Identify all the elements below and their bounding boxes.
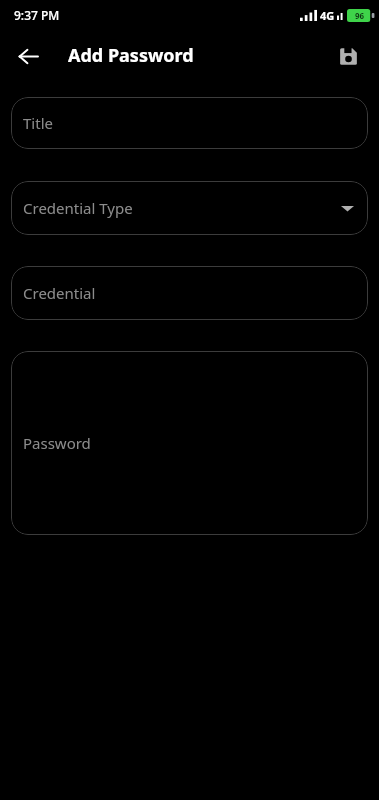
staticText: Password — [23, 433, 91, 453]
staticText: 9:37 PM — [14, 7, 60, 23]
staticText: Credential Type — [23, 198, 133, 218]
staticText: Add Password — [68, 43, 194, 68]
button[interactable]: Password — [11, 351, 368, 535]
staticText: Title — [23, 113, 53, 133]
staticText: 96 — [355, 10, 365, 21]
staticText: 4G — [320, 8, 335, 23]
staticText: Credential — [23, 283, 96, 303]
button[interactable]: Credential — [11, 266, 368, 320]
button[interactable]: Back — [7, 35, 49, 77]
button[interactable]: Save — [328, 36, 368, 76]
button[interactable]: Title — [11, 97, 368, 149]
button[interactable]: Credential Type — [11, 181, 368, 235]
